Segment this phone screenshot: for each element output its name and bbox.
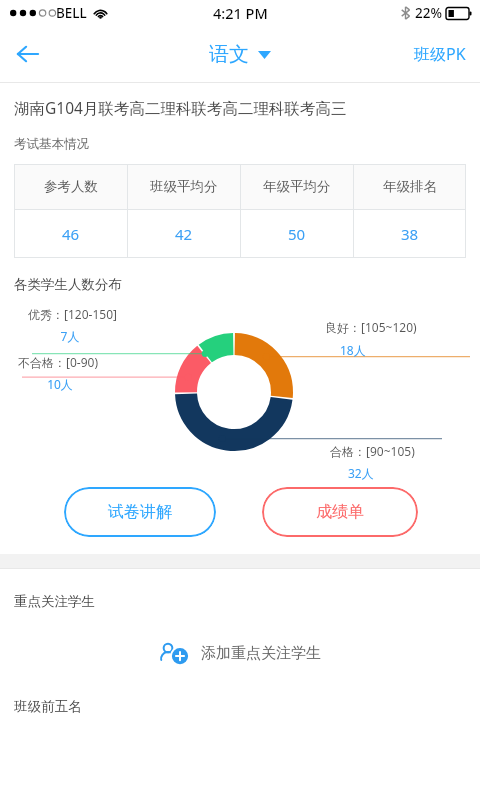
staticText: 32人 xyxy=(348,465,374,481)
staticText: 22% xyxy=(415,4,442,22)
staticText: 4:21 PM xyxy=(213,3,268,23)
staticText: 年级平均分 xyxy=(263,178,331,195)
staticText: 18人 xyxy=(340,342,366,358)
staticText: 各类学生人数分布 xyxy=(14,276,122,293)
staticText: 合格：[90~105) xyxy=(330,443,415,459)
staticText: 良好：[105~120) xyxy=(325,319,417,335)
staticText: 班级平均分 xyxy=(150,178,218,195)
button[interactable]: 添加重点关注学生 xyxy=(0,640,480,666)
staticText: 试卷讲解 xyxy=(108,502,172,522)
staticText: 湖南G104月联考高二理科联考高二理科联考高三 xyxy=(14,97,347,118)
staticText: 添加重点关注学生 xyxy=(201,644,321,663)
button[interactable]: 语文 xyxy=(209,42,271,67)
staticText: 46 xyxy=(62,224,80,244)
button[interactable]: Back xyxy=(0,26,56,82)
staticText: 成绩单 xyxy=(316,502,364,522)
staticText: 年级排名 xyxy=(383,178,437,195)
staticText: 42 xyxy=(175,224,193,244)
staticText: 50 xyxy=(288,224,306,244)
staticText: BELL xyxy=(56,4,87,22)
button[interactable]: 试卷讲解 xyxy=(64,487,216,537)
button[interactable]: 班级PK xyxy=(400,31,480,77)
staticText: 班级前五名 xyxy=(14,698,82,715)
staticText: 重点关注学生 xyxy=(14,593,95,610)
staticText: 班级PK xyxy=(414,43,466,65)
staticText: 参考人数 xyxy=(44,178,98,195)
button[interactable]: 成绩单 xyxy=(262,487,418,537)
staticText: 7人 xyxy=(0,328,140,344)
staticText: 考试基本情况 xyxy=(14,136,89,152)
staticText: 优秀：[120-150] xyxy=(28,306,117,322)
staticText: 不合格：[0-90) xyxy=(18,354,99,370)
staticText: 38 xyxy=(401,224,419,244)
staticText: 10人 xyxy=(0,376,130,392)
staticText: 语文 xyxy=(209,42,249,67)
